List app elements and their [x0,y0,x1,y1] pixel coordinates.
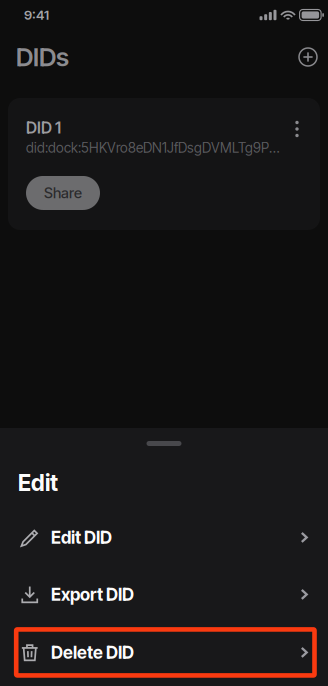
staticText: DID 1 [26,118,61,137]
staticText: Edit [18,469,58,496]
button[interactable]: Share [26,176,100,210]
staticText: DIDs [16,42,69,72]
button[interactable]: Edit DID [0,514,328,560]
staticText: did:dock:5HKVro8eDN1JfDsgDVMLTg9P2... [26,139,280,156]
button[interactable]: Export DID [0,571,328,617]
staticText: Export DID [51,584,134,605]
button[interactable]: Add DID [289,38,327,76]
button[interactable]: Delete DID [0,629,328,675]
staticText: Edit DID [51,527,112,548]
button[interactable]: More options [288,118,306,140]
staticText: Share [44,184,82,202]
staticText: 9:41 [24,7,49,23]
staticText: Delete DID [51,642,134,663]
